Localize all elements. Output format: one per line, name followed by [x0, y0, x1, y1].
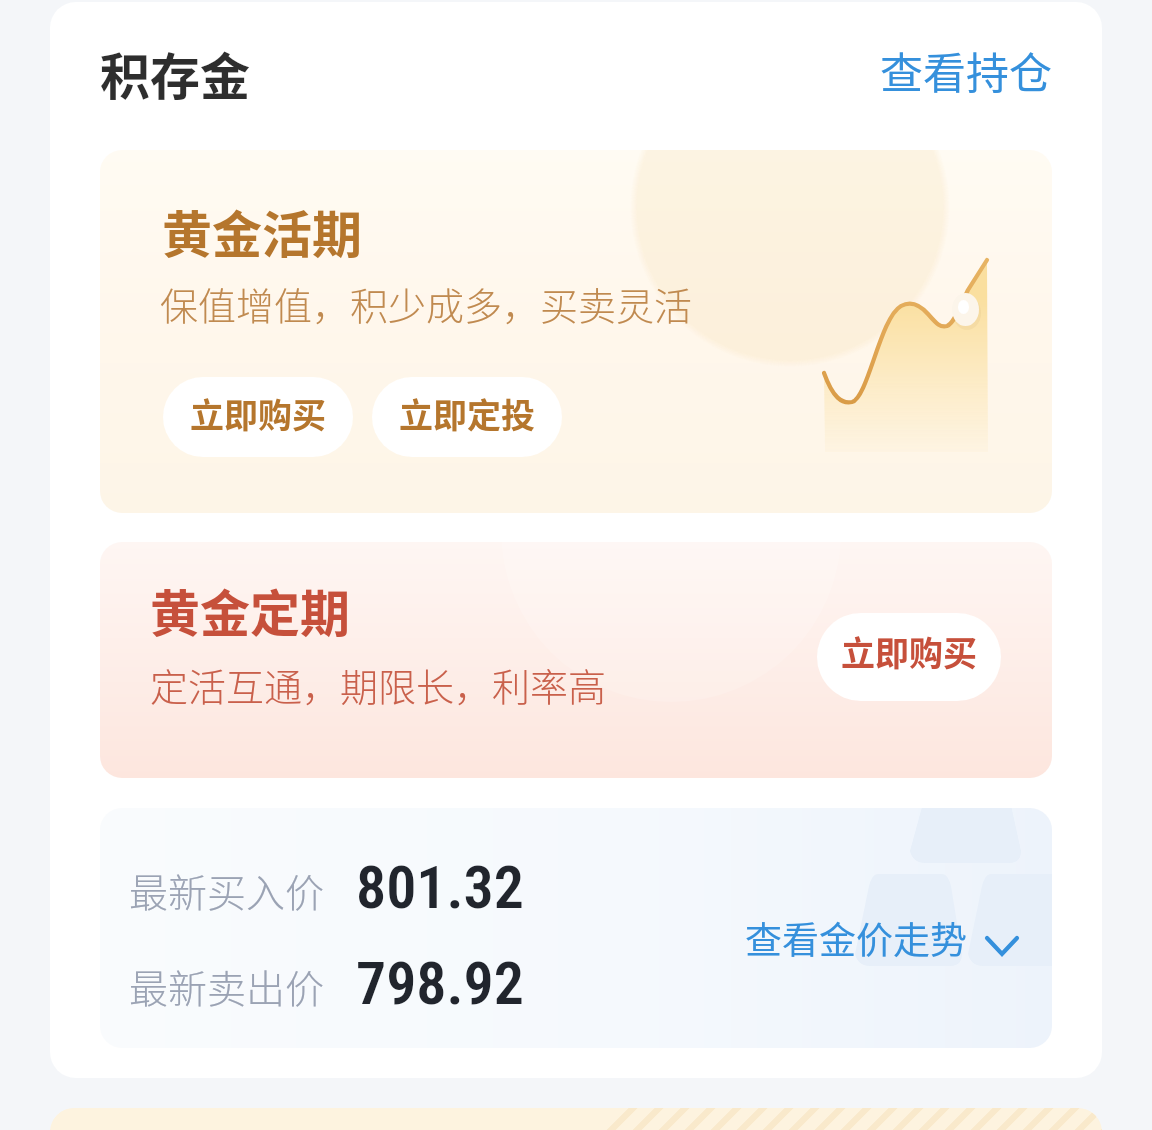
staticText: 积存金 [100, 37, 250, 109]
button[interactable]: 查看金价走势 [745, 911, 1020, 965]
button[interactable]: 黄金定期 [100, 542, 1052, 778]
staticText: 查看持仓 [880, 39, 1052, 101]
staticText: 801.32 [356, 852, 524, 922]
staticText: 立即购买 [190, 389, 326, 438]
button[interactable]: 黄金活期 [100, 150, 1052, 513]
staticText: 最新卖出价 [129, 958, 325, 1014]
button[interactable] [50, 1108, 1102, 1130]
button[interactable]: 立即购买 [817, 613, 1001, 701]
staticText: 查看金价走势 [745, 911, 967, 965]
button[interactable]: 积存金 [100, 37, 250, 109]
other: Expand [984, 935, 1020, 957]
staticText: 立即定投 [399, 389, 535, 438]
button[interactable]: 查看持仓 [876, 39, 1052, 101]
staticText: 保值增值，积少成多，买卖灵活 [160, 276, 693, 331]
staticText: 最新买入价 [129, 862, 325, 918]
staticText: 定活互通，期限长，利率高 [150, 657, 607, 712]
staticText: 黄金定期 [150, 574, 350, 646]
button[interactable]: 立即购买 [163, 377, 353, 457]
staticText: 798.92 [356, 948, 524, 1018]
staticText: 黄金活期 [162, 195, 362, 267]
staticText: 立即购买 [841, 627, 977, 676]
button[interactable]: 立即定投 [372, 377, 562, 457]
